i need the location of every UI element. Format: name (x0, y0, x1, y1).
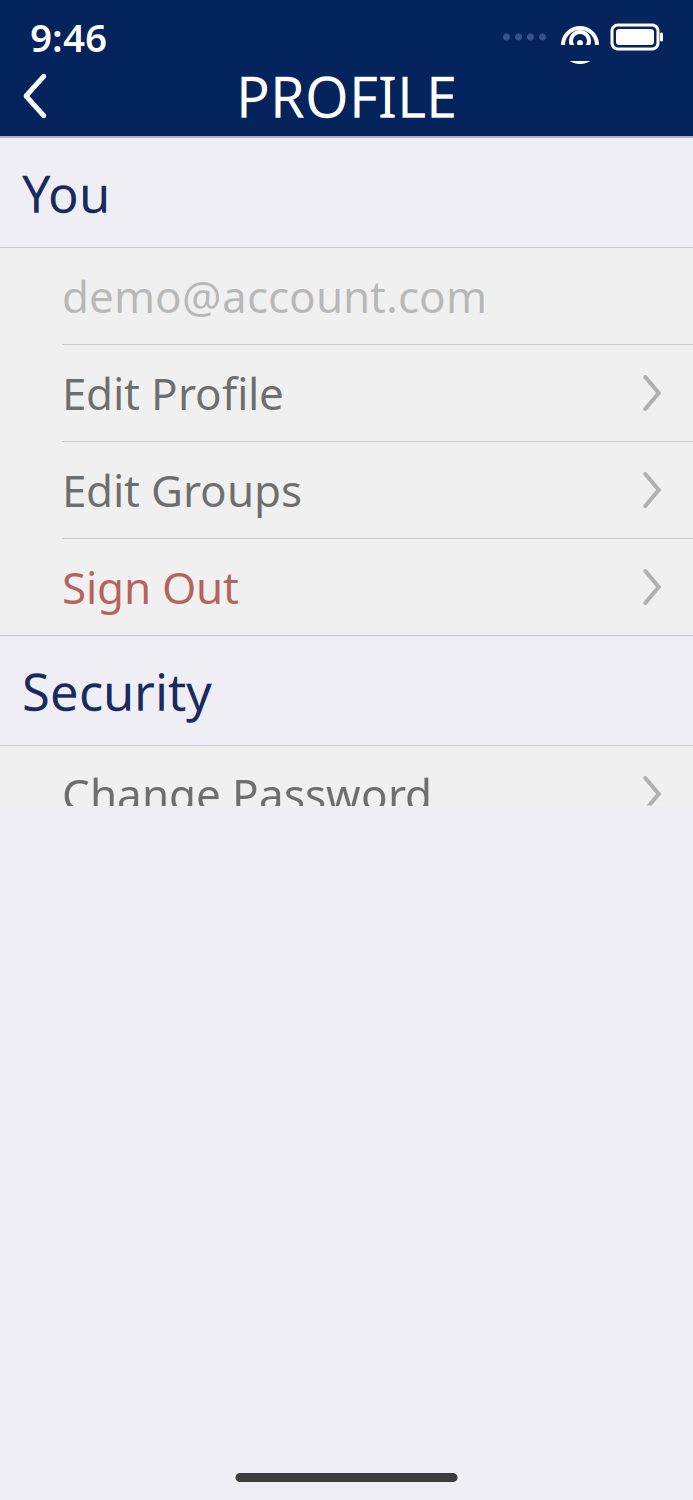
button[interactable]: Sign Out (0, 539, 693, 635)
button[interactable]: Edit Profile (0, 345, 693, 442)
staticText: Security (22, 657, 212, 725)
button[interactable]: Edit Groups (0, 442, 693, 539)
staticText: You (22, 159, 110, 227)
button[interactable]: Back (0, 63, 52, 129)
staticText: 9:46 (30, 11, 107, 63)
staticText: Edit Groups (62, 461, 302, 519)
staticText: Sign Out (62, 558, 239, 616)
staticText: Edit Profile (62, 364, 284, 422)
button[interactable]: Change Password (0, 746, 693, 843)
staticText: PROFILE (236, 59, 457, 133)
staticText: demo@account.com (62, 267, 487, 325)
staticText: Change Password (62, 765, 432, 823)
